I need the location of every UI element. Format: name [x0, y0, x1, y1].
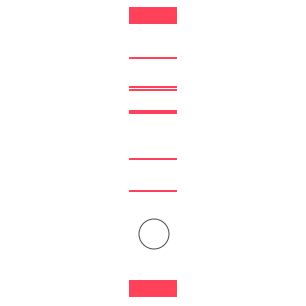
button[interactable]: Profile	[138, 219, 168, 249]
